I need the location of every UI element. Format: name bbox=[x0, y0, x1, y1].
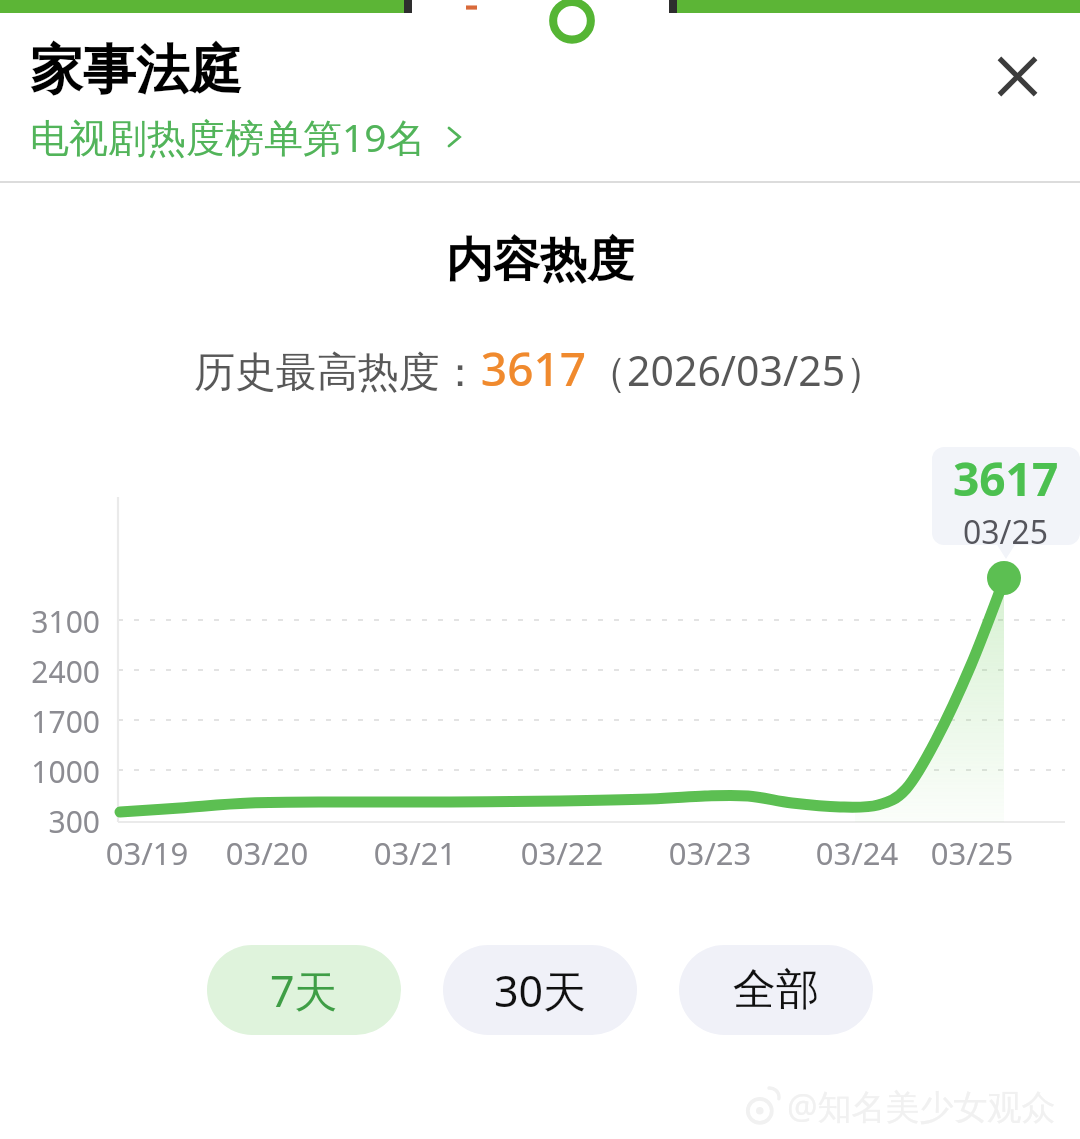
staticText: 2400 bbox=[0, 651, 100, 692]
staticText: @知名美少女观众 bbox=[787, 1083, 1056, 1129]
staticText: 300 bbox=[0, 801, 100, 842]
staticText: 内容热度 bbox=[0, 231, 1080, 290]
staticText: 03/19 bbox=[87, 832, 207, 874]
staticText: 03/23 bbox=[650, 832, 770, 874]
staticText: 家事法庭 bbox=[30, 37, 242, 104]
staticText: 03/25 bbox=[963, 510, 1049, 545]
staticText: 1700 bbox=[0, 701, 100, 742]
button[interactable]: 7天 bbox=[207, 945, 401, 1035]
staticText: 03/22 bbox=[502, 832, 622, 874]
staticText: 1000 bbox=[0, 751, 100, 792]
staticText: 03/24 bbox=[797, 832, 917, 874]
staticText: 电视剧热度榜单第19名 bbox=[30, 110, 426, 163]
staticText: 全部 bbox=[733, 963, 819, 1017]
staticText: 3100 bbox=[0, 601, 100, 642]
staticText: 30天 bbox=[494, 961, 587, 1020]
staticText: 3617 bbox=[953, 447, 1059, 510]
button[interactable]: 30天 bbox=[443, 945, 637, 1035]
staticText: 03/20 bbox=[207, 832, 327, 874]
button[interactable]: 全部 bbox=[679, 945, 873, 1035]
button[interactable]: Close bbox=[974, 33, 1060, 119]
staticText: 03/21 bbox=[355, 832, 475, 874]
staticText: 7天 bbox=[270, 961, 338, 1020]
button[interactable]: 电视剧热度榜单第19名 bbox=[30, 110, 468, 163]
staticText: 03/25 bbox=[912, 832, 1032, 874]
staticText: 历史最高热度：3617（2026/03/25） bbox=[0, 337, 1080, 400]
